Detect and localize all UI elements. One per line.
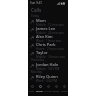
other: Outgoing call: [30, 64, 34, 68]
other: Outgoing call: [30, 20, 34, 24]
button[interactable]: Outgoing call: [28, 50, 68, 58]
other: Outgoing call: [30, 44, 34, 48]
staticText: Calls: [31, 7, 42, 13]
button[interactable]: Contacts: [44, 84, 52, 94]
staticText: Mobile · 12 min ago: [36, 23, 64, 26]
staticText: Chris Park: [36, 42, 56, 47]
staticText: Sun 9:41: [30, 1, 43, 5]
staticText: Contacts: [44, 89, 52, 92]
other: Outgoing call: [30, 76, 34, 80]
staticText: Riley Quinn: [36, 74, 58, 79]
button[interactable]: Outgoing call: [28, 42, 68, 50]
other: Outgoing call: [30, 28, 34, 32]
staticText: Mom: [36, 18, 46, 23]
button[interactable]: Outgoing call: [28, 34, 68, 42]
staticText: Today: [31, 14, 40, 18]
button[interactable]: Recents: [36, 84, 44, 94]
other: Outgoing call: [30, 36, 34, 40]
staticText: Work · 3:44 PM: [36, 79, 58, 82]
button[interactable]: Outgoing call: [28, 62, 68, 70]
staticText: Yesterday: [31, 58, 45, 62]
button[interactable]: Keypad: [52, 84, 60, 94]
staticText: James Lee: [36, 26, 56, 31]
staticText: Voice: [61, 89, 68, 92]
staticText: Work · 1 hour ago: [36, 39, 62, 42]
staticText: Monday: [31, 70, 43, 74]
staticText: Mobile · 3 hours ago: [36, 55, 65, 58]
button[interactable]: Outgoing call: [28, 18, 68, 26]
staticText: Recents: [36, 89, 44, 92]
other: Outgoing call: [30, 52, 34, 56]
staticText: Favs: [29, 89, 35, 92]
button[interactable]: Outgoing call: [28, 74, 68, 82]
button[interactable]: Outgoing call: [28, 26, 68, 34]
staticText: Mobile · 9:05 PM: [36, 67, 60, 70]
staticText: Keypad: [52, 89, 60, 92]
staticText: Taylor: [36, 50, 48, 55]
button[interactable]: Favs: [28, 84, 36, 94]
staticText: Mobile · 24 min ago: [36, 31, 64, 34]
staticText: Home · 2 hours ago: [36, 47, 64, 50]
button[interactable]: Voice: [60, 84, 68, 94]
staticText: Jordan Hale: [36, 62, 59, 67]
staticText: Alex Kim: [36, 34, 53, 39]
